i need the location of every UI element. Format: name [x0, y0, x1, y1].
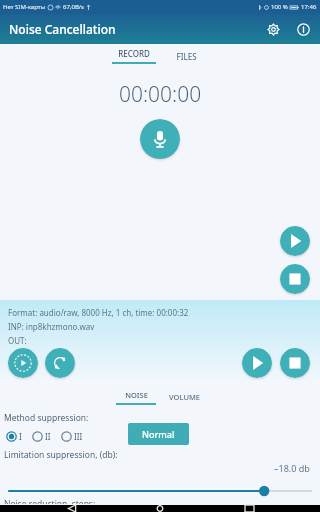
staticText: –18.0 db [274, 462, 310, 474]
button[interactable]: NOISE [116, 386, 156, 408]
button[interactable]: Back [55, 505, 89, 512]
staticText: RECORD [118, 48, 150, 59]
button[interactable]: VOLUME [164, 386, 204, 408]
staticText: Normal [142, 428, 175, 440]
button[interactable]: Play output [242, 348, 272, 378]
button[interactable]: Process [45, 348, 75, 378]
button[interactable]: Play [280, 226, 310, 256]
staticText: Limitation suppression, (db): [4, 449, 118, 461]
button[interactable]: Settings [262, 18, 284, 40]
staticText: OUT: [8, 335, 27, 346]
button[interactable]: II [30, 429, 53, 444]
staticText: Нет SIM-карты [3, 3, 46, 11]
staticText: I [19, 431, 22, 442]
staticText: INP: inp8khzmono.wav [8, 321, 95, 332]
staticText: Noise reduction, steps: [4, 498, 96, 504]
staticText: Noise Cancellation [9, 21, 116, 37]
button[interactable]: Home [143, 505, 177, 512]
staticText: Format: audio/raw, 8000 Hz, 1 ch, time: … [8, 307, 189, 318]
button[interactable]: I [4, 429, 24, 444]
button[interactable]: III [59, 429, 85, 444]
button[interactable]: RECORD [112, 44, 156, 68]
staticText: FILES [176, 51, 197, 62]
staticText: III [74, 431, 83, 442]
staticText: II [45, 431, 51, 442]
staticText: 100 % [271, 3, 288, 11]
button[interactable]: Limitation suppression slider [0, 484, 320, 498]
button[interactable]: Stop output [280, 348, 310, 378]
button[interactable]: FILES [164, 44, 208, 68]
button[interactable]: Info [292, 18, 314, 40]
button[interactable]: Play preview [8, 348, 38, 378]
button[interactable]: Stop [280, 264, 310, 294]
staticText: NOISE [125, 390, 148, 400]
staticText: VOLUME [169, 392, 200, 402]
staticText: Method suppression: [4, 412, 89, 424]
button[interactable]: Recent apps [232, 505, 266, 512]
staticText: 67,0B/s [63, 3, 84, 11]
staticText: 17:46 [301, 3, 317, 11]
button[interactable]: Normal [128, 423, 189, 445]
staticText: 00:00:00 [119, 80, 202, 109]
button[interactable]: Record [140, 119, 180, 159]
